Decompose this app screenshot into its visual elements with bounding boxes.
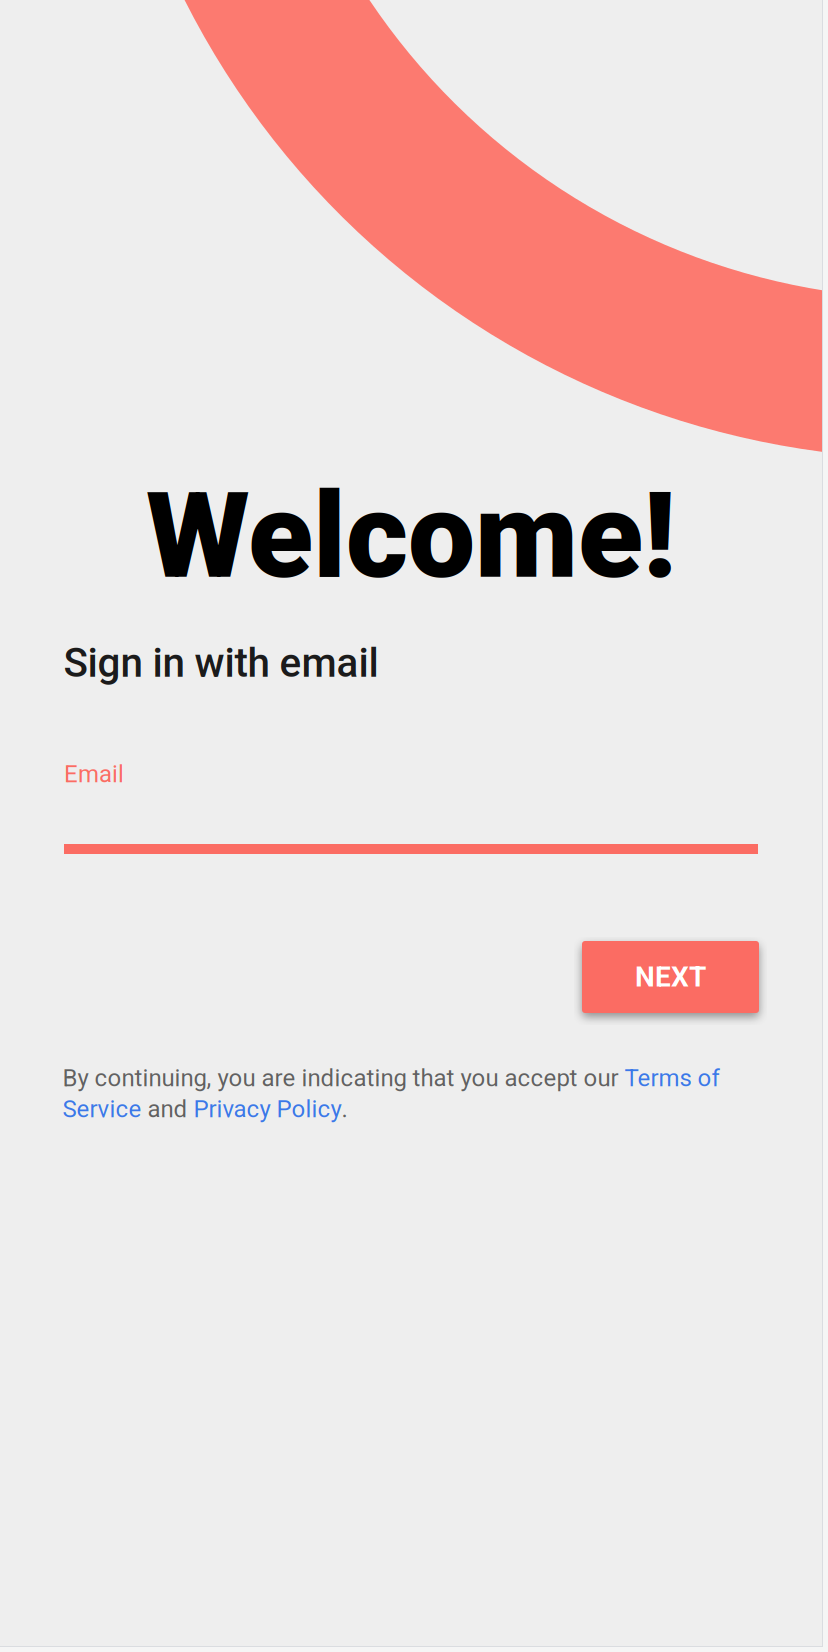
staticText: Email [64, 760, 124, 788]
button[interactable]: NEXT [582, 941, 759, 1013]
staticText: and [141, 1095, 193, 1123]
staticText: NEXT [635, 961, 706, 993]
staticText: Service [62, 1095, 141, 1123]
button[interactable]: Terms of [624, 1064, 719, 1092]
staticText: Privacy Policy [193, 1095, 341, 1123]
staticText: Welcome! [146, 466, 676, 606]
staticText: Terms of [624, 1064, 719, 1092]
staticText: By continuing, you are indicating that y… [62, 1064, 624, 1092]
button[interactable]: Service [62, 1095, 141, 1123]
staticText: . [341, 1095, 347, 1123]
button[interactable]: Privacy Policy [193, 1095, 341, 1123]
staticText: Sign in with email [63, 639, 378, 687]
button[interactable]: Email [64, 760, 758, 854]
